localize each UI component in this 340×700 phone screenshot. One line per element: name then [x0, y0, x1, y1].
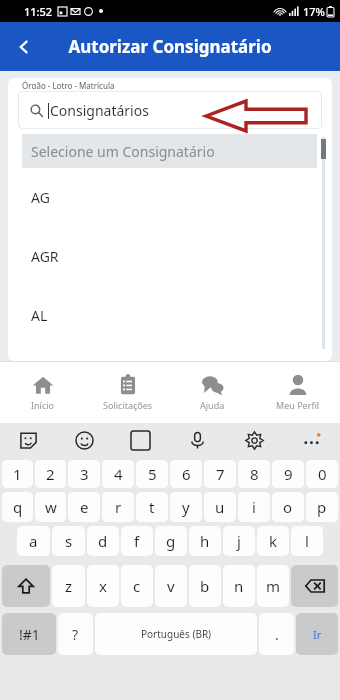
- button[interactable]: Solicitações: [85, 362, 170, 423]
- staticText: d: [98, 531, 108, 551]
- button[interactable]: m: [257, 565, 289, 607]
- staticText: v: [167, 576, 175, 596]
- button[interactable]: Ir: [296, 613, 338, 655]
- button[interactable]: d: [87, 526, 119, 556]
- staticText: m: [266, 576, 281, 596]
- button[interactable]: k: [257, 526, 289, 556]
- button[interactable]: Consignatários: [18, 91, 322, 129]
- button[interactable]: n: [223, 565, 255, 607]
- staticText: r: [115, 497, 122, 517]
- button[interactable]: b: [189, 565, 221, 607]
- button[interactable]: !#1: [2, 613, 56, 655]
- button[interactable]: Settings: [226, 423, 283, 457]
- button[interactable]: p: [306, 492, 338, 522]
- button[interactable]: v: [155, 565, 187, 607]
- staticText: t: [149, 497, 155, 517]
- button[interactable]: GIF: [112, 423, 169, 457]
- button[interactable]: i: [238, 492, 270, 522]
- staticText: 4: [114, 464, 123, 484]
- button[interactable]: a: [17, 526, 50, 556]
- staticText: AG: [31, 188, 50, 207]
- staticText: Órgão - Lotro - Matrícula: [22, 80, 115, 89]
- button[interactable]: 7: [204, 460, 236, 488]
- button[interactable]: z: [52, 565, 85, 607]
- staticText: Meu Perfil: [276, 399, 320, 411]
- staticText: Ajuda: [200, 399, 225, 411]
- staticText: Consignatários: [50, 101, 149, 120]
- button[interactable]: AGR: [22, 227, 317, 286]
- staticText: 6: [182, 464, 191, 484]
- button[interactable]: 4: [102, 460, 134, 488]
- staticText: i: [252, 497, 256, 517]
- staticText: a: [29, 531, 38, 551]
- staticText: 3: [80, 464, 89, 484]
- staticText: AGR: [31, 247, 59, 266]
- button[interactable]: .: [259, 613, 294, 655]
- button[interactable]: 9: [272, 460, 304, 488]
- staticText: f: [134, 531, 140, 551]
- button[interactable]: Back: [6, 29, 42, 65]
- staticText: 17%: [303, 4, 325, 19]
- staticText: 1: [13, 464, 22, 484]
- button[interactable]: f: [121, 526, 153, 556]
- button[interactable]: o: [272, 492, 304, 522]
- button[interactable]: g: [155, 526, 187, 556]
- button[interactable]: More options: [283, 423, 340, 457]
- staticText: w: [45, 497, 57, 517]
- staticText: 2: [46, 464, 55, 484]
- staticText: 7: [216, 464, 225, 484]
- button[interactable]: Voice input: [169, 423, 226, 457]
- staticText: 0: [318, 464, 327, 484]
- button[interactable]: y: [170, 492, 202, 522]
- staticText: ?: [72, 625, 79, 644]
- button[interactable]: h: [189, 526, 221, 556]
- staticText: q: [13, 497, 23, 517]
- button[interactable]: q: [2, 492, 33, 522]
- staticText: l: [305, 531, 309, 551]
- staticText: y: [182, 497, 190, 517]
- button[interactable]: 3: [68, 460, 100, 488]
- button[interactable]: w: [35, 492, 66, 522]
- staticText: Português (BR): [141, 627, 212, 641]
- staticText: !#1: [19, 625, 40, 644]
- button[interactable]: Backspace: [291, 565, 338, 607]
- staticText: s: [65, 531, 73, 551]
- button[interactable]: AG: [22, 168, 317, 227]
- button[interactable]: ?: [58, 613, 93, 655]
- button[interactable]: Meu Perfil: [255, 362, 340, 423]
- button[interactable]: t: [136, 492, 168, 522]
- button[interactable]: l: [291, 526, 323, 556]
- button[interactable]: c: [121, 565, 153, 607]
- button[interactable]: Shift: [2, 565, 50, 607]
- button[interactable]: Ajuda: [170, 362, 255, 423]
- staticText: b: [200, 576, 210, 596]
- button[interactable]: x: [87, 565, 119, 607]
- staticText: Solicitações: [103, 399, 153, 411]
- staticText: 8: [250, 464, 259, 484]
- staticText: o: [283, 497, 293, 517]
- button[interactable]: Selecione um Consignatário: [22, 134, 317, 168]
- button[interactable]: Início: [0, 362, 85, 423]
- staticText: g: [166, 531, 176, 551]
- staticText: Autorizar Consignatário: [68, 35, 272, 58]
- staticText: j: [237, 531, 241, 551]
- button[interactable]: 2: [35, 460, 66, 488]
- button[interactable]: j: [223, 526, 255, 556]
- button[interactable]: 6: [170, 460, 202, 488]
- button[interactable]: Emoji: [56, 423, 112, 457]
- button[interactable]: r: [102, 492, 134, 522]
- staticText: Início: [31, 399, 55, 411]
- button[interactable]: Português (BR): [95, 613, 257, 655]
- staticText: e: [80, 497, 89, 517]
- button[interactable]: u: [204, 492, 236, 522]
- button[interactable]: 5: [136, 460, 168, 488]
- button[interactable]: e: [68, 492, 100, 522]
- button[interactable]: AL: [22, 286, 317, 345]
- button[interactable]: s: [52, 526, 85, 556]
- button[interactable]: 8: [238, 460, 270, 488]
- button[interactable]: 1: [2, 460, 33, 488]
- staticText: 5: [148, 464, 157, 484]
- staticText: h: [200, 531, 210, 551]
- button[interactable]: 0: [306, 460, 338, 488]
- button[interactable]: Sticker: [0, 423, 56, 457]
